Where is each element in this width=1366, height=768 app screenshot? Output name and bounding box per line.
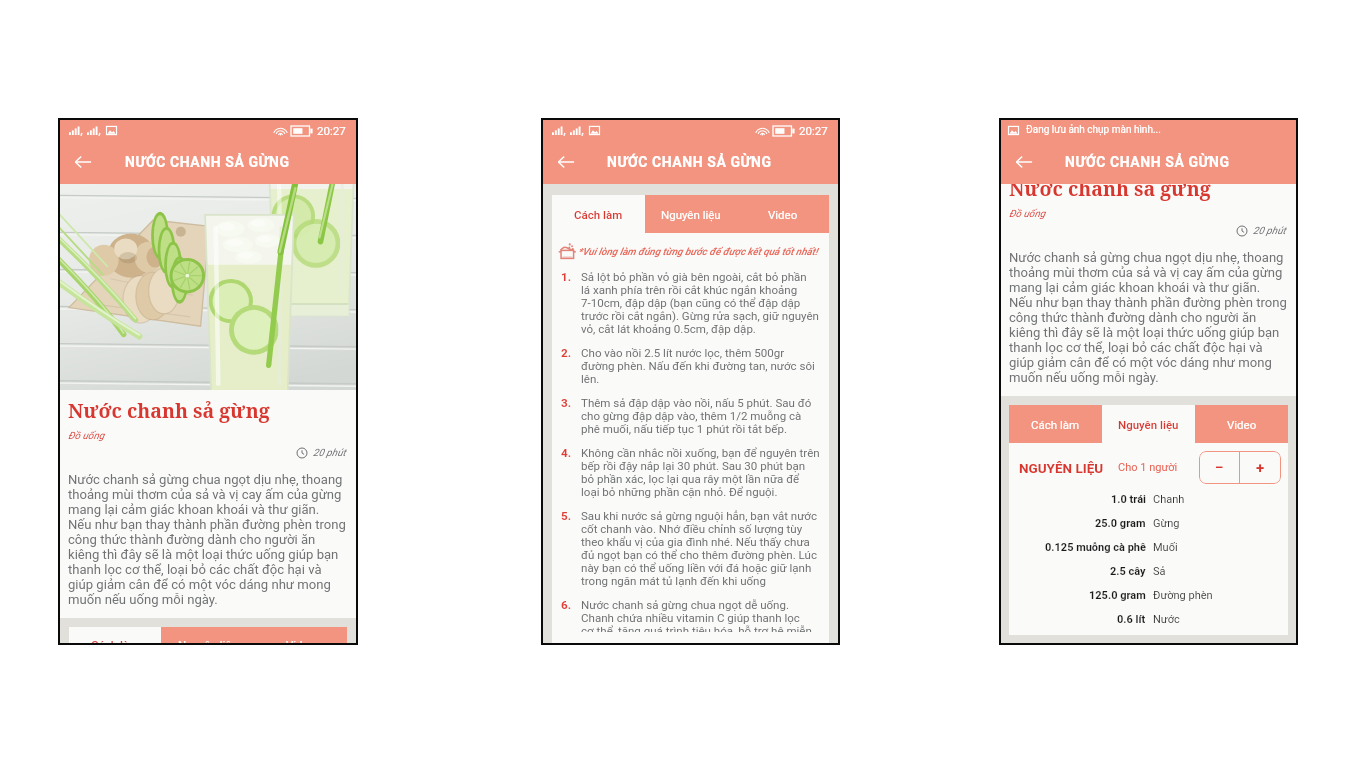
staticText: 0.6 lít (1117, 613, 1146, 626)
staticText: Nước (1153, 613, 1180, 626)
button[interactable]: Cách làm (552, 195, 645, 233)
staticText: 4. (561, 446, 572, 460)
staticText: Sả lột bỏ phần vỏ già bên ngoài, cắt bỏ … (581, 270, 819, 335)
button[interactable]: Nguyên liệu (161, 627, 254, 643)
staticText: Nước chanh sả gừng chua ngọt dễ uống. Ch… (581, 598, 812, 632)
staticText: NƯỚC CHANH SẢ GỪNG (125, 154, 290, 170)
staticText: 1.0 trái (1111, 493, 1146, 506)
button[interactable]: Video (254, 627, 347, 643)
staticText: 1. (561, 270, 572, 284)
staticText: Cho 1 người (1118, 461, 1178, 474)
staticText: 3. (561, 396, 572, 410)
staticText: Đồ uống (68, 430, 105, 442)
staticText: Gừng (1153, 517, 1180, 530)
staticText: 6. (561, 598, 572, 612)
staticText: Nước chanh sả gừng (68, 397, 270, 424)
button[interactable]: Cách làm (1009, 405, 1102, 443)
staticText: Chanh (1153, 493, 1185, 506)
staticText: NƯỚC CHANH SẢ GỪNG (607, 154, 772, 170)
staticText: Sả (1153, 565, 1166, 578)
button[interactable]: Increase servings (1240, 451, 1281, 484)
staticText: – (1215, 460, 1224, 475)
staticText: 125.0 gram (1089, 589, 1146, 602)
button[interactable]: Back (554, 150, 578, 174)
staticText: 25.0 gram (1095, 517, 1146, 530)
staticText: 20 phút (313, 447, 346, 459)
staticText: 20:27 (799, 124, 828, 137)
staticText: NƯỚC CHANH SẢ GỪNG (1065, 154, 1230, 170)
button[interactable]: Decrease servings (1199, 451, 1239, 484)
staticText: Nguyên liệu (661, 208, 721, 221)
staticText: Cho vào nồi 2.5 lít nước lọc, thêm 500gr… (581, 346, 815, 385)
staticText: Nước chanh sả gừng chua ngọt dịu nhẹ, th… (68, 472, 346, 607)
staticText: Nguyên liệu (1118, 418, 1179, 431)
staticText: 0.125 muỗng cà phê (1045, 541, 1146, 554)
staticText: Đang lưu ảnh chụp màn hình... (1026, 124, 1161, 136)
button[interactable]: Cách làm (69, 627, 161, 643)
staticText: *Vui lòng làm đúng từng bước để được kết… (578, 246, 818, 258)
staticText: Video (286, 638, 316, 643)
staticText: Muối (1153, 541, 1178, 554)
staticText: Sau khi nước sả gừng nguội hẳn, bạn vắt … (581, 509, 817, 587)
staticText: Cách làm (91, 638, 140, 643)
staticText: Đồ uống (1009, 208, 1046, 220)
button[interactable]: Nguyên liệu (1102, 405, 1195, 443)
button[interactable]: Nguyên liệu (645, 195, 737, 233)
staticText: Nguyên liệu (178, 638, 238, 643)
button[interactable]: Video (737, 195, 829, 233)
staticText: 20 phút (1253, 225, 1286, 237)
staticText: Nước chanh sả gừng chua ngọt dịu nhẹ, th… (1009, 250, 1286, 385)
staticText: Cách làm (1031, 418, 1080, 431)
button[interactable]: Back (1012, 150, 1036, 174)
staticText: + (1256, 459, 1265, 477)
staticText: 20:27 (317, 124, 346, 137)
button[interactable]: Back (71, 150, 95, 174)
staticText: Đường phèn (1153, 589, 1213, 602)
staticText: Cách làm (574, 208, 623, 221)
button[interactable]: Video (1195, 405, 1288, 443)
staticText: 2.5 cây (1110, 565, 1146, 578)
staticText: 2. (561, 346, 572, 360)
staticText: Video (768, 208, 798, 221)
staticText: Không cần nhắc nồi xuống, bạn để nguyên … (581, 446, 820, 498)
staticText: Video (1227, 418, 1257, 431)
staticText: Thêm sả đập dập vào nồi, nấu 5 phút. Sau… (581, 396, 812, 435)
staticText: NGUYÊN LIỆU (1019, 460, 1104, 476)
staticText: Nước chanh sả gừng (1009, 184, 1211, 202)
staticText: 5. (561, 509, 572, 523)
